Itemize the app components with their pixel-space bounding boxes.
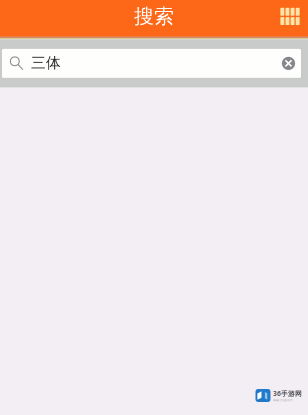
staticText: 36手游网 <box>273 389 302 398</box>
staticText: 搜索 <box>134 4 174 29</box>
button[interactable]: 三体 <box>2 49 301 78</box>
staticText: 三体 <box>31 54 61 72</box>
button[interactable]: Clear text <box>278 52 298 74</box>
button[interactable]: Categories <box>274 0 306 32</box>
staticText: www.36yx.com <box>273 398 292 402</box>
